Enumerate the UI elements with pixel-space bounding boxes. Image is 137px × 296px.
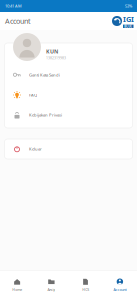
staticText: BLUE	[124, 24, 132, 28]
staticText: 10:41 AM	[5, 3, 22, 9]
button[interactable]: Arsip	[34, 270, 68, 296]
button[interactable]: HCS	[68, 270, 103, 296]
button[interactable]: IGI Blue	[112, 14, 134, 28]
staticText: Kebijakan Privasi	[29, 112, 62, 118]
button[interactable]: FAQ	[4, 85, 132, 105]
staticText: Keluar	[29, 146, 42, 152]
button[interactable]: Account	[103, 270, 137, 296]
staticText: Arsip	[47, 287, 55, 292]
button[interactable]: Home	[0, 270, 34, 296]
staticText: 53%	[125, 3, 132, 9]
staticText: Home	[12, 287, 22, 292]
staticText: FAQ	[29, 92, 37, 98]
button[interactable]: Ganti Kata Sandi	[4, 65, 132, 85]
staticText: Account	[113, 287, 126, 292]
button[interactable]: Keluar	[4, 139, 132, 159]
staticText: IGI	[123, 14, 134, 24]
staticText: 1382319983	[46, 55, 66, 60]
staticText: Account	[5, 16, 31, 26]
button[interactable]: Kebijakan Privasi	[4, 105, 132, 125]
staticText: Ganti Kata Sandi	[29, 72, 60, 78]
staticText: HCS	[82, 287, 89, 292]
staticText: KUN	[46, 48, 58, 55]
